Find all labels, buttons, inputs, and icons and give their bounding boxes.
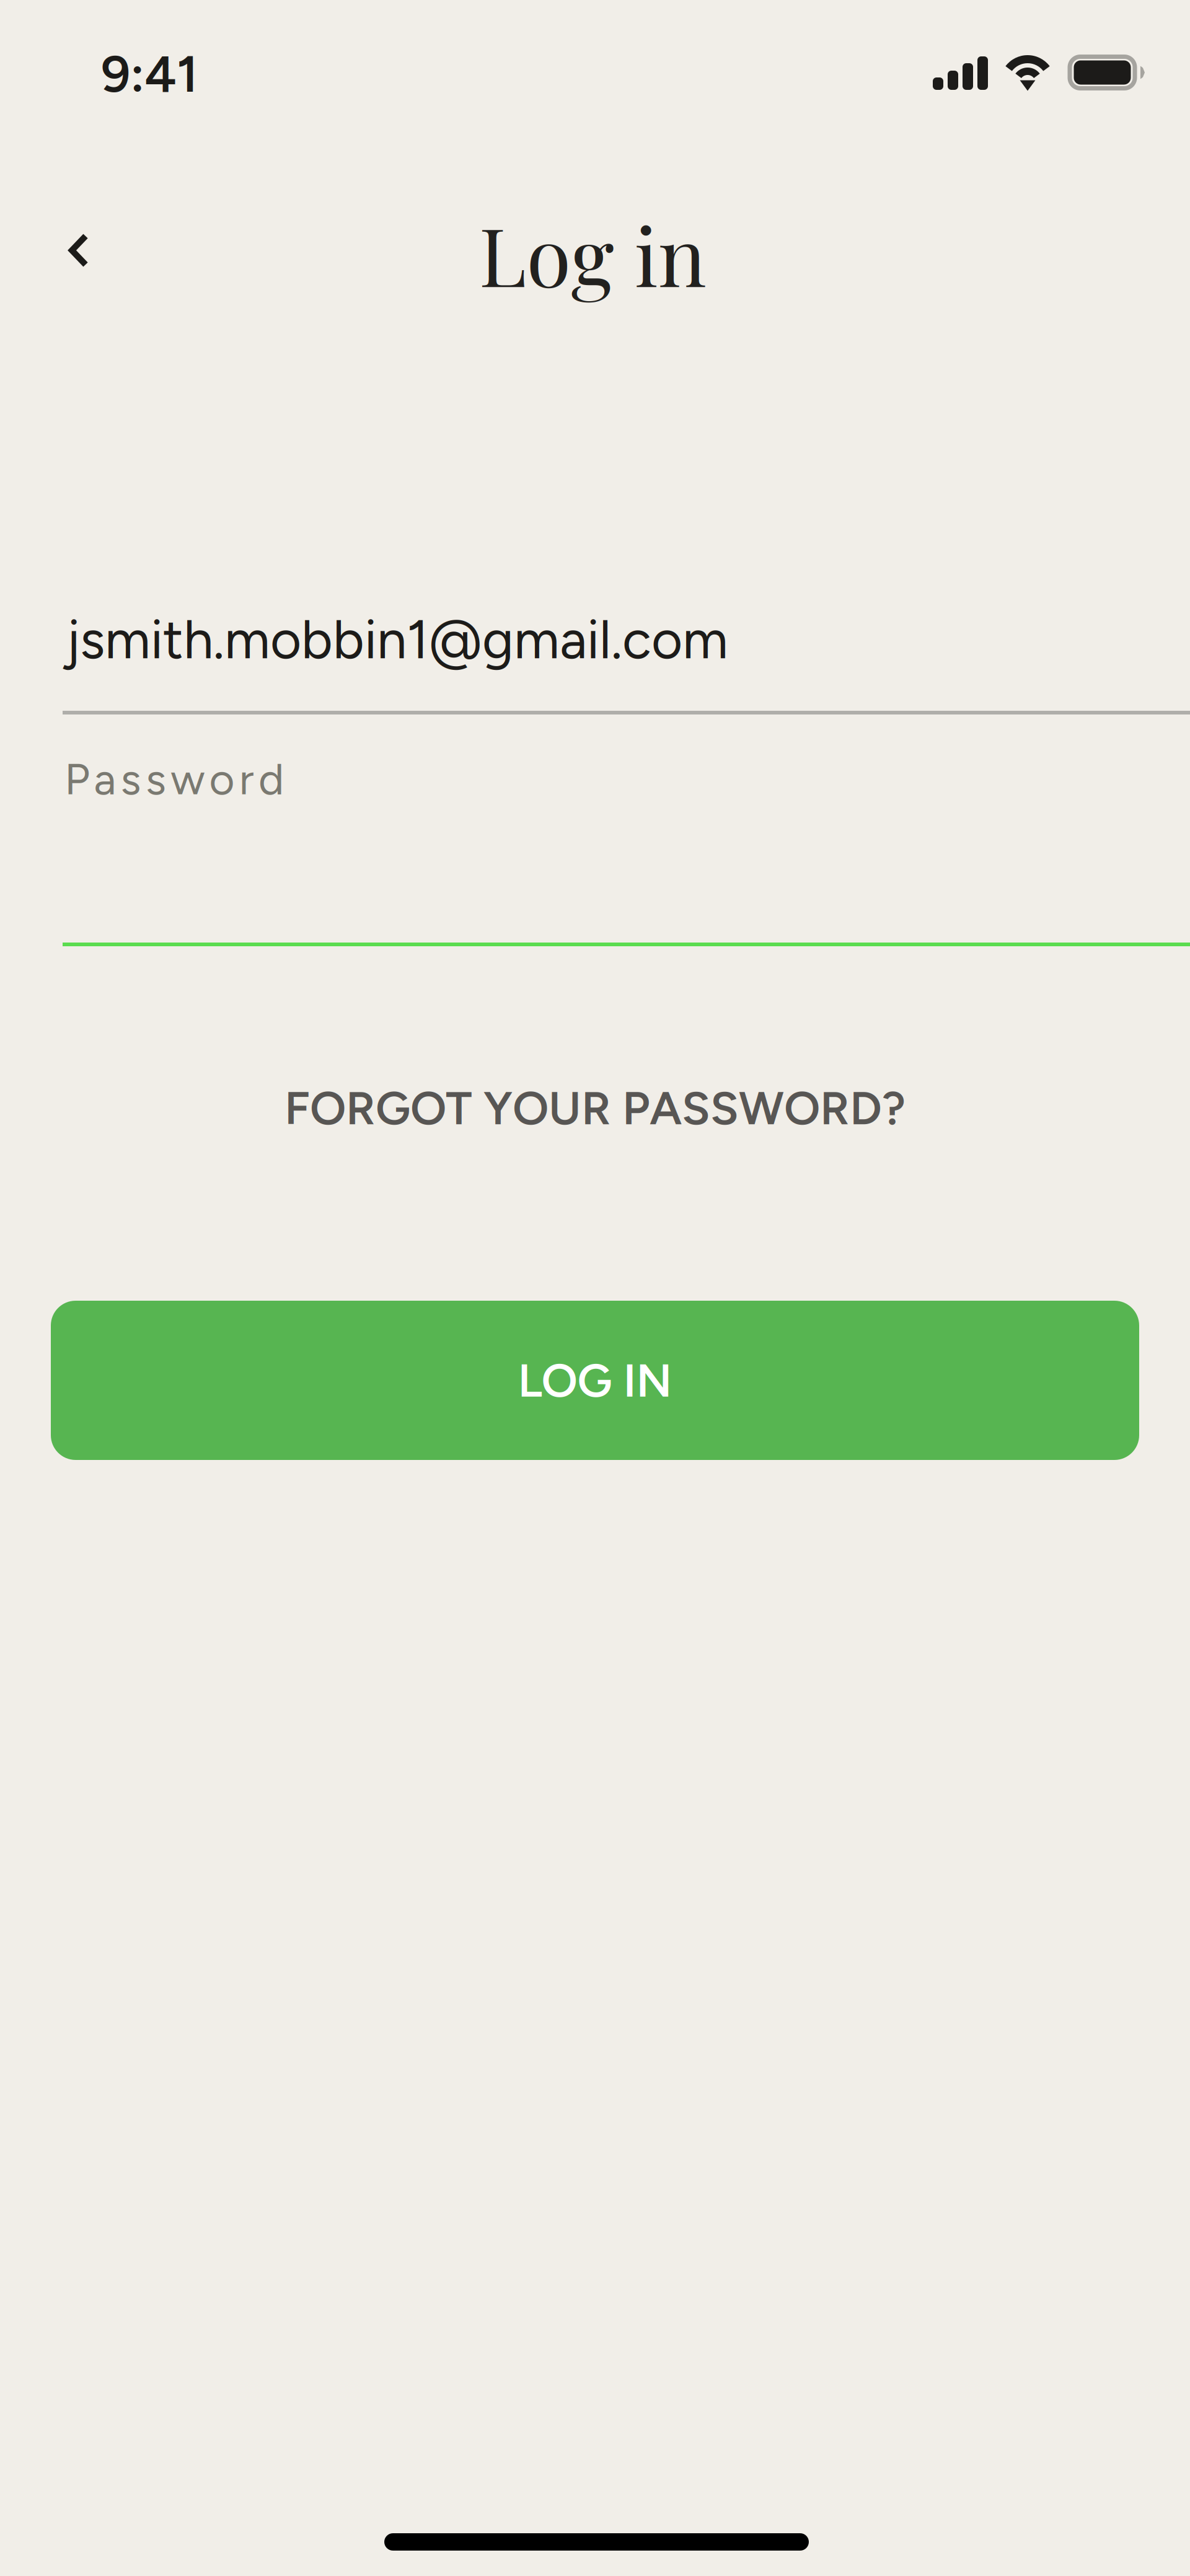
button[interactable]: Password (63, 737, 1190, 946)
button[interactable]: LOG IN (51, 1301, 1139, 1460)
staticText: 9:41 (101, 43, 198, 104)
staticText: Password (64, 753, 284, 805)
button[interactable]: Back (30, 204, 129, 297)
staticText: jsmith.mobbin1@gmail.com (66, 607, 728, 672)
staticText: Log in (479, 199, 706, 307)
button[interactable]: FORGOT YOUR PASSWORD? (161, 1053, 1029, 1163)
staticText: LOG IN (518, 1353, 672, 1408)
staticText: FORGOT YOUR PASSWORD? (284, 1080, 906, 1136)
button[interactable]: jsmith.mobbin1@gmail.com (63, 583, 1190, 714)
